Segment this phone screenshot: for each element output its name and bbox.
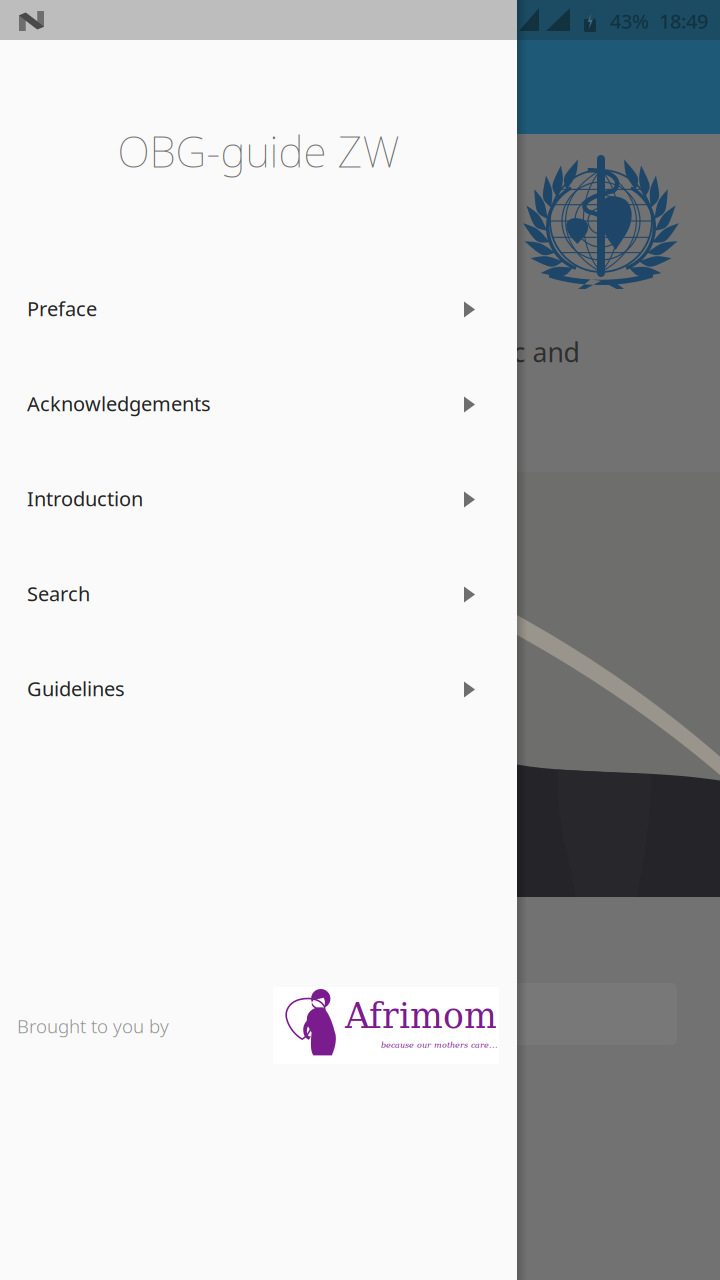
staticText: Introduction [27, 485, 143, 512]
button[interactable]: Introduction [0, 452, 517, 547]
staticText: Preface [27, 295, 97, 322]
staticText: Acknowledgements [27, 390, 211, 417]
button[interactable]: Preface [0, 262, 517, 357]
staticText: Search [27, 580, 90, 607]
staticText: OBG-guide ZW [117, 123, 399, 179]
staticText: 18:49 [659, 8, 708, 34]
staticText: because our mothers care... [381, 1040, 498, 1050]
staticText: 43% [610, 8, 649, 34]
staticText: Afrimom [345, 996, 497, 1036]
button[interactable]: Guidelines [0, 642, 517, 737]
button[interactable]: Search [0, 547, 517, 642]
staticText: Brought to you by [17, 1014, 169, 1038]
button[interactable]: Acknowledgements [0, 357, 517, 452]
staticText: Guidelines [27, 675, 125, 702]
staticText: Clinical guidelines for obstetric and [140, 334, 579, 370]
